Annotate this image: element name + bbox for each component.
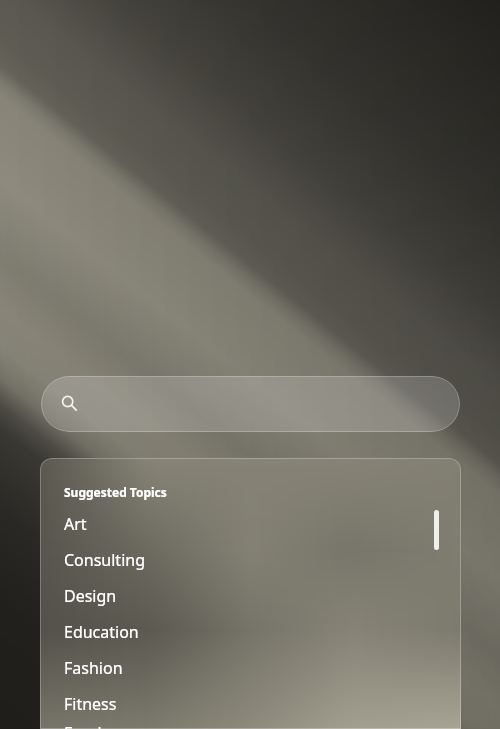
button[interactable]: Art [40,506,461,542]
button[interactable]: Consulting [40,542,461,578]
staticText: Art [64,513,87,535]
button[interactable]: Fashion [40,650,461,686]
button[interactable]: Search [41,376,460,432]
button[interactable]: Design [40,578,461,614]
staticText: Design [64,585,117,607]
button[interactable]: Food [40,722,461,729]
staticText: Food [64,722,102,729]
staticText: Fitness [64,693,117,715]
staticText: Consulting [64,549,145,571]
staticText: Education [64,621,139,643]
staticText: Fashion [64,657,123,679]
button[interactable]: Fitness [40,686,461,722]
button[interactable]: Education [40,614,461,650]
other: Search [60,394,80,414]
staticText: Suggested Topics [64,484,167,500]
